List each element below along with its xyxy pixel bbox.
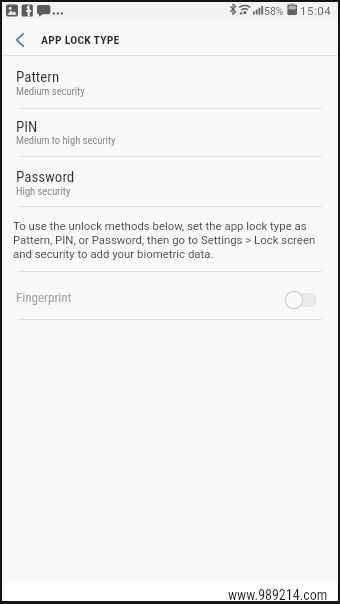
staticText: www.989214.com (228, 587, 328, 603)
button[interactable] (2, 22, 38, 58)
button[interactable]: PIN (2, 109, 338, 156)
button[interactable]: Pattern (2, 56, 338, 108)
staticText: Medium to high security (16, 134, 116, 146)
staticText: 58% (264, 5, 284, 17)
button[interactable]: Fingerprint (2, 272, 338, 319)
staticText: Pattern (16, 68, 60, 86)
button[interactable]: Password (2, 157, 338, 206)
staticText: APP LOCK TYPE (41, 33, 120, 47)
staticText: PIN (16, 118, 38, 136)
staticText: High security (16, 185, 71, 197)
staticText: 15:04 (300, 4, 332, 17)
staticText: Medium security (16, 85, 85, 97)
staticText: Fingerprint (16, 290, 72, 305)
staticText: To use the unlock methods below, set the… (13, 219, 316, 261)
staticText: Password (16, 168, 75, 186)
